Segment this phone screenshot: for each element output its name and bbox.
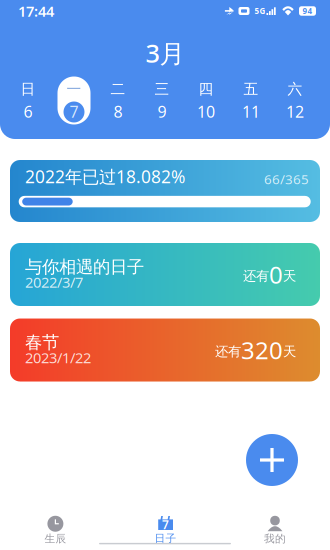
staticText: 2022/3/7 — [25, 272, 83, 292]
staticText: 二 — [110, 80, 125, 98]
staticText: 生辰 — [44, 532, 66, 545]
button[interactable]: 一 — [0, 0, 330, 139]
staticText: 还有 — [215, 343, 241, 360]
staticText: 还有 — [243, 268, 269, 284]
button[interactable]: 2022年已过18.082% — [10, 160, 320, 222]
staticText: 7 — [162, 517, 169, 532]
button[interactable]: 日 — [0, 0, 330, 139]
staticText: 94 — [302, 6, 312, 16]
staticText: 2022年已过18.082% — [25, 165, 185, 188]
button[interactable]: 生辰 — [0, 512, 110, 548]
staticText: 日 — [20, 80, 35, 98]
staticText: 17:44 — [18, 1, 54, 21]
staticText: 与你相遇的日子 — [25, 256, 144, 278]
button[interactable]: 四 — [0, 0, 330, 139]
staticText: 11 — [242, 101, 260, 122]
staticText: 日子 — [155, 532, 177, 545]
button[interactable]: 我的 — [220, 512, 330, 548]
staticText: 天 — [283, 343, 296, 360]
staticText: 7 — [69, 101, 78, 122]
button[interactable]: 五 — [0, 0, 330, 139]
staticText: 0 — [269, 259, 283, 290]
staticText: 天 — [283, 268, 296, 284]
staticText: 66/365 — [264, 170, 309, 188]
button[interactable]: 7 — [111, 512, 221, 548]
staticText: 10 — [197, 101, 215, 122]
staticText: 5G — [254, 6, 265, 16]
staticText: 我的 — [264, 532, 286, 545]
staticText: 2023/1/22 — [25, 348, 91, 367]
staticText: 320 — [241, 334, 283, 366]
staticText: 四 — [198, 80, 213, 98]
staticText: 12 — [286, 101, 304, 122]
staticText: 6 — [23, 101, 32, 122]
staticText: 三 — [154, 80, 169, 98]
staticText: 一 — [66, 80, 81, 98]
staticText: 六 — [287, 80, 302, 98]
button[interactable]: 春节 — [10, 318, 320, 381]
staticText: 春节 — [25, 332, 59, 353]
button[interactable]: 六 — [0, 0, 330, 139]
button[interactable]: Add — [246, 434, 298, 486]
staticText: 9 — [157, 101, 166, 122]
button[interactable]: 二 — [0, 0, 330, 139]
staticText: 8 — [113, 101, 122, 122]
staticText: 五 — [243, 80, 258, 98]
button[interactable]: 三 — [0, 0, 330, 139]
button[interactable]: 与你相遇的日子 — [10, 243, 320, 306]
staticText: 3月 — [145, 36, 184, 70]
